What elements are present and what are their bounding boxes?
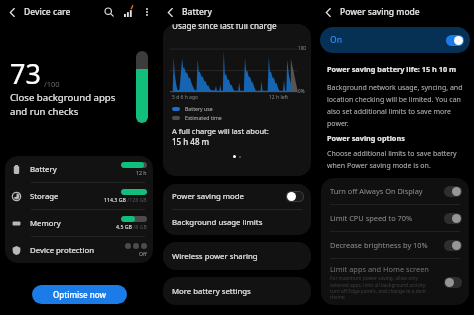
staticText: Battery [182,6,212,18]
staticText: Turn off Always On Display [330,186,423,196]
staticText: /8 GB [132,223,147,230]
staticText: Limit CPU speed to 70% [330,213,413,223]
staticText: More battery settings [172,286,251,297]
staticText: On [330,34,342,46]
button[interactable]: More battery settings [163,277,311,305]
staticText: 73 [10,55,41,92]
staticText: Power saving mode [340,6,420,18]
button[interactable]: Memory [5,210,153,236]
staticText: 100 [298,45,306,51]
staticText: /128 GB [126,196,147,203]
button[interactable]: Diagnostics [120,4,136,20]
staticText: /100 [44,79,60,89]
staticText: 15 h 48 m [172,136,210,147]
button[interactable]: Toggle [444,213,462,224]
button[interactable]: Back [3,3,21,21]
staticText: Wireless power sharing [172,251,258,262]
button[interactable]: Back [161,3,179,21]
button[interactable]: Background usage limits [163,210,311,235]
button[interactable]: Battery [5,156,153,182]
button[interactable]: On [320,27,470,53]
button[interactable]: More options [139,4,155,20]
staticText: Choose additional limits to save battery… [327,149,465,170]
button[interactable]: Toggle [286,191,304,202]
staticText: Battery [30,164,57,175]
staticText: Device care [24,6,71,18]
button[interactable]: Power saving mode [163,184,311,209]
button[interactable]: Optimise now [32,285,127,304]
staticText: 12 h left [269,94,289,101]
staticText: Memory [30,218,61,229]
staticText: Storage [30,191,59,202]
staticText: 0% [298,88,305,94]
staticText: Limit apps and Home screen [330,264,429,274]
staticText: 12 h [136,169,147,176]
staticText: Power saving options [327,133,405,143]
button[interactable]: Limit apps and Home screen [321,259,469,305]
staticText: Power saving battery life: 15 h 10 m [327,64,457,74]
button[interactable]: Back [319,3,337,21]
button[interactable]: Limit CPU speed to 70% [321,205,469,231]
staticText: Background usage limits [172,217,263,228]
staticText: 114.3 GB [104,196,126,203]
staticText: Off [139,250,147,257]
button[interactable]: Device protection [5,237,153,263]
staticText: Background network usage, syncing, and l… [327,83,465,128]
button[interactable]: Storage [5,183,153,209]
button[interactable]: Toggle [444,240,462,251]
staticText: Battery use [185,105,213,112]
staticText: 4.5 GB [116,223,132,230]
staticText: Decrease brightness by 10% [330,240,428,250]
button[interactable]: Turn off Always On Display [321,178,469,204]
button[interactable]: Toggle [444,186,462,197]
staticText: Optimise now [53,289,106,300]
staticText: Estimated time [185,114,222,121]
staticText: Device protection [30,245,94,256]
button[interactable]: Wireless power sharing [163,242,311,270]
button[interactable]: Decrease brightness by 10% [321,232,469,258]
staticText: Close background apps and run checks [10,91,116,117]
staticText: 5 d 6 h ago [172,94,198,101]
button[interactable]: Search [101,4,117,20]
staticText: For maximum power saving, allow only sel… [330,275,434,300]
staticText: A full charge will last about: [172,126,269,136]
staticText: Usage since last full charge [172,24,277,31]
button[interactable]: Toggle [444,277,462,288]
staticText: Power saving mode [172,191,244,202]
button[interactable]: Toggle [446,35,464,46]
